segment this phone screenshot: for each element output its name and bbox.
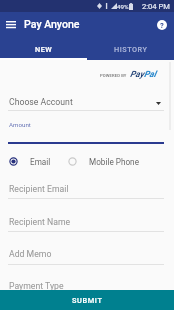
staticText: Choose Account <box>9 97 73 107</box>
staticText: ? <box>160 21 164 30</box>
staticText: Email <box>30 157 51 167</box>
button[interactable]: Mobile Phone <box>67 156 139 167</box>
button[interactable]: SUBMIT <box>0 290 174 310</box>
staticText: Pay Anyone <box>24 18 80 30</box>
staticText: Pal <box>144 69 157 79</box>
button[interactable]: Add Memo <box>0 245 174 263</box>
staticText: Amount <box>9 121 31 128</box>
staticText: HISTORY <box>114 45 148 54</box>
staticText: SUBMIT <box>72 296 103 305</box>
button[interactable]: Open navigation menu <box>0 13 23 37</box>
staticText: Mobile Phone <box>89 157 139 167</box>
button[interactable]: Email <box>8 156 51 167</box>
staticText: NEW <box>35 45 53 54</box>
staticText: Recipient Name <box>9 217 71 227</box>
button[interactable]: Recipient Name <box>0 213 174 231</box>
button[interactable]: Payment Type <box>0 277 174 295</box>
staticText: Add Memo <box>9 249 52 259</box>
button[interactable]: Recipient Email <box>0 180 174 198</box>
staticText: 49% <box>117 3 129 10</box>
staticText: POWERED BY <box>100 73 127 78</box>
button[interactable]: HISTORY <box>87 38 174 60</box>
staticText: Payment Type <box>9 281 64 291</box>
staticText: 2:04 PM <box>142 2 170 11</box>
staticText: Recipient Email <box>9 184 69 194</box>
staticText: Pay <box>130 69 144 79</box>
button[interactable]: Help <box>150 13 174 37</box>
button[interactable]: Choose Account <box>0 92 174 110</box>
button[interactable]: NEW <box>0 38 87 60</box>
